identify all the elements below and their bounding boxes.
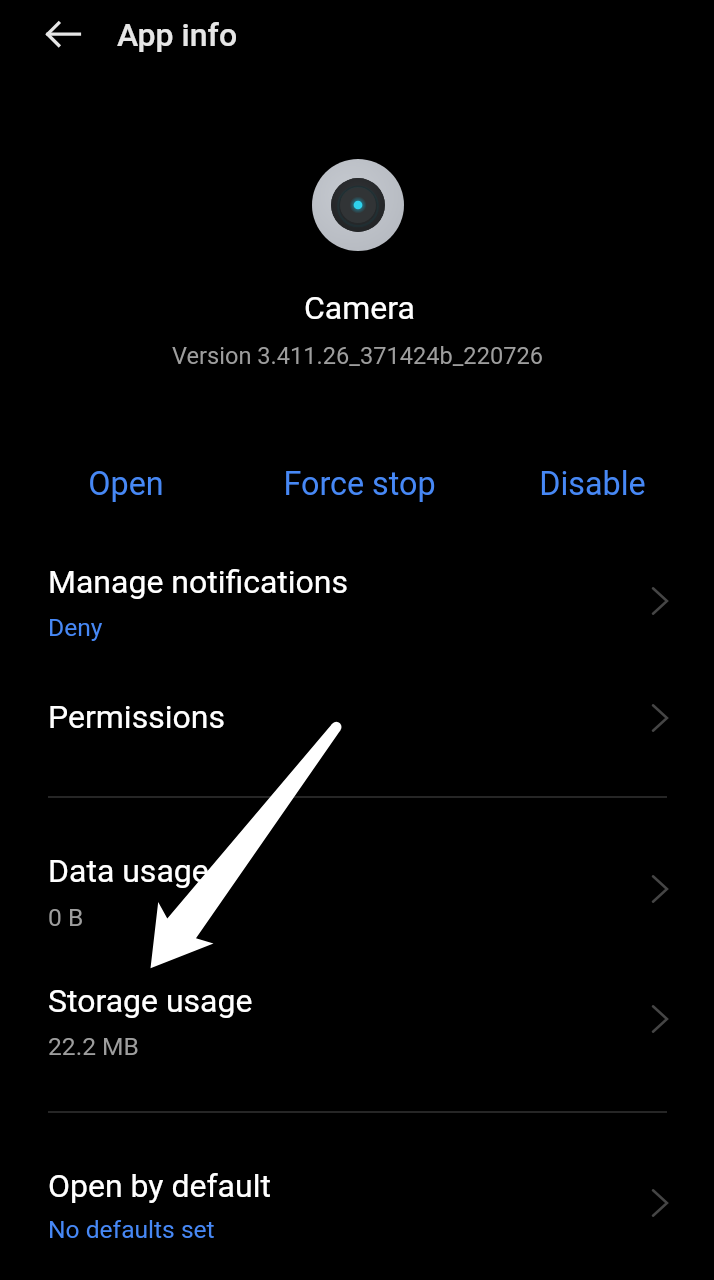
staticText: Permissions — [48, 698, 225, 736]
staticText: Disable — [539, 465, 646, 503]
staticText: 0 B — [48, 903, 84, 932]
staticText: Storage usage — [48, 982, 253, 1020]
staticText: Open — [88, 465, 164, 503]
staticText: Deny — [48, 613, 103, 642]
staticText: Data usage — [48, 852, 209, 890]
button[interactable]: Permissions — [0, 668, 714, 764]
staticText: App info — [117, 16, 238, 54]
button[interactable]: Open by default — [0, 1143, 714, 1273]
staticText: Open by default — [48, 1167, 271, 1205]
button[interactable]: Navigate up — [40, 10, 88, 58]
other: Camera app icon — [312, 159, 404, 251]
button[interactable]: Disable — [476, 456, 709, 512]
button[interactable]: Force stop — [243, 456, 476, 512]
staticText: Version 3.411.26_371424b_220726 — [172, 342, 543, 370]
staticText: Camera — [304, 289, 415, 327]
staticText: Manage notifications — [48, 563, 349, 601]
button[interactable]: Storage usage — [0, 958, 714, 1086]
staticText: Force stop — [283, 465, 436, 503]
staticText: No defaults set — [48, 1215, 215, 1244]
staticText: 22.2 MB — [48, 1032, 139, 1061]
button[interactable]: Data usage — [0, 828, 714, 958]
button[interactable]: Open — [9, 456, 243, 512]
button[interactable]: Manage notifications — [0, 540, 714, 668]
